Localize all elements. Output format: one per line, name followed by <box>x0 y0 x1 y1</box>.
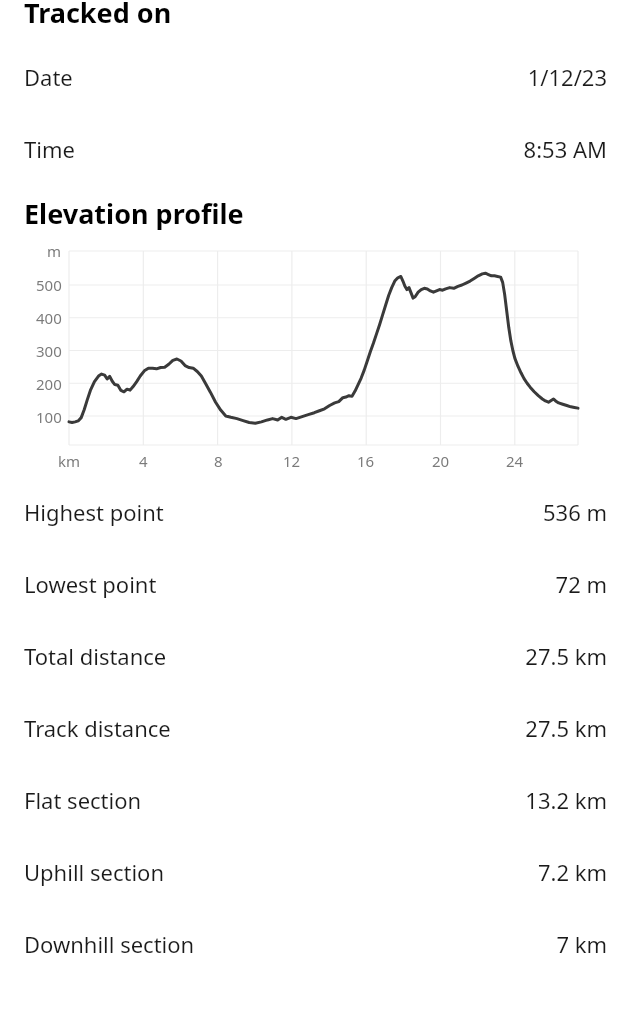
button[interactable]: Track distance <box>0 692 631 764</box>
staticText: 27.5 km <box>525 641 607 671</box>
staticText: 100 <box>36 407 62 427</box>
button[interactable]: Downhill section <box>0 908 631 980</box>
staticText: Date <box>24 62 73 92</box>
staticText: 7.2 km <box>537 857 607 887</box>
button[interactable]: Time <box>0 113 631 185</box>
staticText: 12 <box>283 451 301 471</box>
staticText: 27.5 km <box>525 713 607 743</box>
staticText: Uphill section <box>24 857 164 887</box>
button[interactable]: Lowest point <box>0 548 631 620</box>
button[interactable]: Date <box>0 41 631 113</box>
button[interactable]: Flat section <box>0 764 631 836</box>
staticText: Downhill section <box>24 929 195 959</box>
staticText: 24 <box>506 451 524 471</box>
staticText: 8 <box>214 451 223 471</box>
staticText: 7 km <box>556 929 607 959</box>
staticText: 4 <box>139 451 148 471</box>
staticText: 16 <box>357 451 375 471</box>
staticText: 200 <box>36 374 62 394</box>
staticText: 72 m <box>555 569 607 599</box>
staticText: 8:53 AM <box>523 134 607 164</box>
staticText: Time <box>24 134 75 164</box>
staticText: Total distance <box>24 641 167 671</box>
button[interactable]: Highest point <box>0 476 631 548</box>
button[interactable]: Total distance <box>0 620 631 692</box>
staticText: Lowest point <box>24 569 157 599</box>
staticText: Track distance <box>24 713 171 743</box>
staticText: m <box>47 241 62 261</box>
staticText: Highest point <box>24 497 164 527</box>
staticText: Tracked on <box>24 0 172 31</box>
staticText: 300 <box>36 341 62 361</box>
staticText: 13.2 km <box>525 785 607 815</box>
staticText: km <box>58 451 81 471</box>
staticText: 536 m <box>542 497 607 527</box>
staticText: 1/12/23 <box>527 62 607 92</box>
staticText: 500 <box>36 275 62 295</box>
staticText: 20 <box>432 451 450 471</box>
staticText: 400 <box>36 308 62 328</box>
staticText: Flat section <box>24 785 142 815</box>
staticText: Elevation profile <box>24 195 244 232</box>
button[interactable]: Uphill section <box>0 836 631 908</box>
